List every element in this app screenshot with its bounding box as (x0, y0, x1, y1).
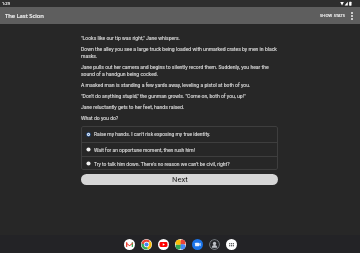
button[interactable]: Next (81, 174, 278, 185)
staticText: A masked man is standing a few yards awa… (81, 82, 251, 88)
button[interactable]: Photos (175, 239, 186, 250)
button[interactable]: More options (347, 7, 356, 24)
button[interactable]: Contacts (209, 239, 220, 250)
staticText: What do you do? (81, 115, 119, 121)
button[interactable]: Gmail (124, 239, 135, 250)
button[interactable]: Meet (192, 239, 203, 250)
staticText: Try to talk him down. There's no reason … (94, 161, 230, 167)
staticText: The Last Scion (5, 12, 44, 20)
button[interactable]: Chrome (141, 239, 152, 250)
staticText: 1:29 (2, 1, 10, 6)
staticText: Next (172, 175, 188, 184)
button[interactable]: SHOW STATS (316, 10, 347, 21)
staticText: "Looks like our tip was right," Jane whi… (81, 35, 180, 41)
button[interactable]: Raise my hands. I can't risk exposing my… (81, 126, 278, 142)
staticText: Raise my hands. I can't risk exposing my… (94, 131, 211, 137)
staticText: Down the alley you see a large truck bei… (81, 46, 278, 59)
staticText: Jane reluctantly gets to her feet, hands… (81, 104, 185, 110)
button[interactable]: Wait for an opportune moment, then rush … (81, 143, 278, 156)
button[interactable]: Try to talk him down. There's no reason … (81, 157, 278, 170)
staticText: Jane pulls out her camera and begins to … (81, 64, 278, 77)
button[interactable]: YouTube (158, 239, 169, 250)
staticText: Wait for an opportune moment, then rush … (94, 147, 195, 153)
staticText: "Don't do anything stupid," the gunman g… (81, 93, 246, 99)
staticText: SHOW STATS (320, 13, 346, 18)
button[interactable]: All apps (226, 239, 237, 250)
